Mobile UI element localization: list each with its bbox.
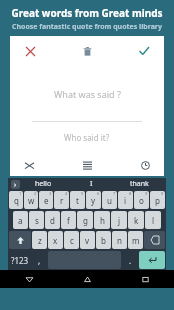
button[interactable]: l <box>145 211 161 229</box>
button[interactable]: thank <box>115 178 163 190</box>
staticText: s <box>35 215 39 226</box>
button[interactable]: t <box>70 191 85 209</box>
button[interactable]: Shift <box>9 231 31 249</box>
button[interactable]: m <box>128 231 143 249</box>
button[interactable]: h <box>94 211 110 229</box>
staticText: 2 <box>34 191 37 196</box>
button[interactable]: I <box>67 178 115 190</box>
button[interactable]: Delete <box>77 41 97 61</box>
staticText: 4 <box>65 191 68 196</box>
button[interactable]: r <box>54 191 69 209</box>
button[interactable]: Home <box>58 270 116 288</box>
staticText: Choose fantastic quote from quotes libra… <box>12 22 162 32</box>
staticText: hello <box>35 179 52 189</box>
staticText: a <box>18 215 23 226</box>
button[interactable]: Recents <box>116 270 174 288</box>
button[interactable]: o <box>134 191 149 209</box>
button[interactable]: z <box>32 231 47 249</box>
button[interactable]: p <box>150 191 165 209</box>
staticText: o <box>139 195 144 206</box>
staticText: 3 <box>49 191 52 196</box>
button[interactable]: y <box>86 191 101 209</box>
staticText: k <box>134 215 139 226</box>
button[interactable]: More suggestions <box>11 180 20 189</box>
button[interactable]: List <box>78 156 96 174</box>
staticText: 5 <box>81 191 84 196</box>
staticText: 7 <box>113 191 116 196</box>
button[interactable]: n <box>112 231 127 249</box>
button[interactable]: Done <box>134 41 154 61</box>
button[interactable]: e <box>39 191 53 209</box>
button[interactable]: Shuffle <box>20 156 38 174</box>
staticText: I <box>90 179 93 189</box>
staticText: i <box>124 195 127 206</box>
staticText: h <box>100 215 105 226</box>
button[interactable]: s <box>29 211 44 229</box>
button[interactable]: ?123 <box>9 251 30 269</box>
staticText: 0 <box>161 191 164 196</box>
staticText: Great words from Great minds <box>11 6 163 20</box>
staticText: What was said ? <box>54 88 121 100</box>
staticText: . <box>129 255 132 266</box>
button[interactable]: k <box>128 211 144 229</box>
staticText: 9 <box>145 191 148 196</box>
button[interactable]: , <box>31 251 47 269</box>
button[interactable]: Back <box>0 270 58 288</box>
staticText: w <box>28 195 35 206</box>
button[interactable]: w <box>24 191 38 209</box>
staticText: x <box>53 235 58 246</box>
staticText: r <box>60 195 64 206</box>
staticText: 1 <box>19 191 22 196</box>
button[interactable]: . <box>122 251 138 269</box>
staticText: v <box>85 235 90 246</box>
staticText: q <box>14 195 19 206</box>
staticText: thank <box>130 179 149 189</box>
button[interactable]: Backspace <box>144 231 165 249</box>
staticText: e <box>44 195 49 206</box>
staticText: m <box>132 235 140 246</box>
button[interactable]: Cancel <box>20 41 40 61</box>
staticText: ?123 <box>11 255 29 266</box>
staticText: l <box>152 215 155 226</box>
button[interactable]: f <box>61 211 76 229</box>
staticText: 8 <box>129 191 132 196</box>
staticText: n <box>117 235 122 246</box>
staticText: y <box>91 195 96 206</box>
staticText: t <box>76 195 79 206</box>
button[interactable]: b <box>96 231 111 249</box>
button[interactable]: d <box>45 211 60 229</box>
button[interactable]: u <box>102 191 117 209</box>
staticText: u <box>107 195 112 206</box>
staticText: , <box>38 255 41 266</box>
button[interactable]: x <box>48 231 63 249</box>
staticText: › <box>14 180 17 189</box>
staticText: d <box>50 215 55 226</box>
button[interactable]: v <box>80 231 95 249</box>
button[interactable]: Enter <box>139 251 165 269</box>
staticText: f <box>67 215 70 226</box>
staticText: c <box>70 235 74 246</box>
button[interactable]: g <box>77 211 93 229</box>
button[interactable]: a <box>13 211 28 229</box>
button[interactable]: hello <box>20 178 67 190</box>
button[interactable]: History <box>136 156 154 174</box>
staticText: 6 <box>97 191 100 196</box>
button[interactable]: j <box>111 211 127 229</box>
button[interactable]: c <box>64 231 79 249</box>
button[interactable]: i <box>118 191 133 209</box>
staticText: g <box>83 215 88 226</box>
staticText: b <box>101 235 106 246</box>
staticText: Who said it? <box>64 132 110 143</box>
staticText: p <box>155 195 160 206</box>
staticText: j <box>118 215 121 226</box>
staticText: z <box>38 235 42 246</box>
button[interactable]: q <box>9 191 23 209</box>
